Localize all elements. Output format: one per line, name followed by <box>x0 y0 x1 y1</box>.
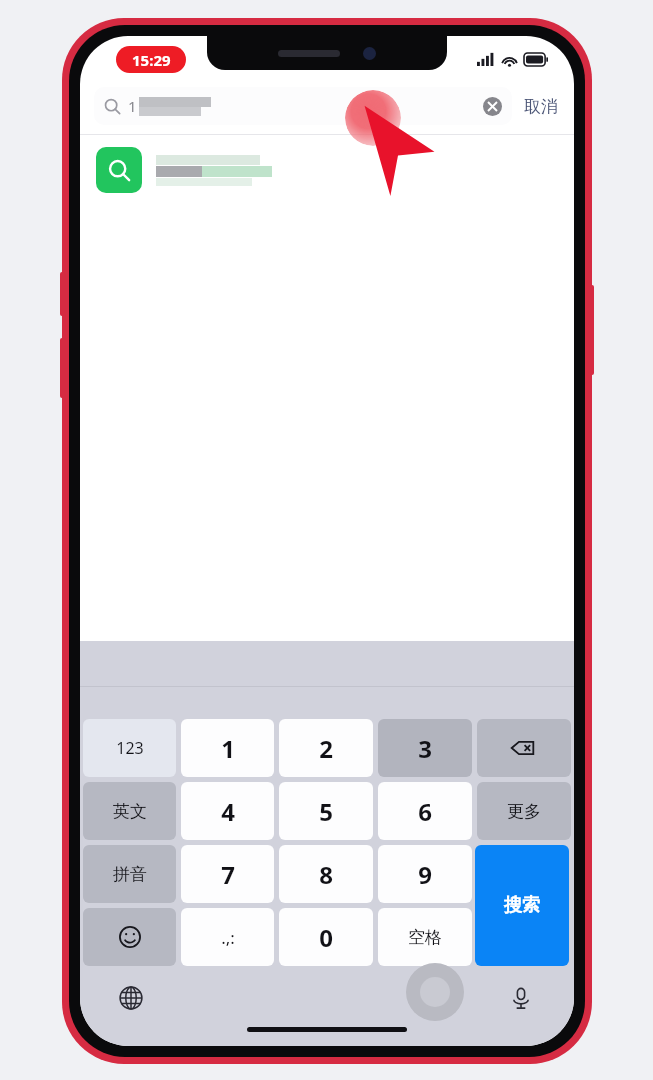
button[interactable]: 0 <box>279 908 373 966</box>
button[interactable]: 3 <box>378 719 472 777</box>
button[interactable]: Voice input <box>504 981 538 1015</box>
staticText: 取消 <box>524 96 558 117</box>
staticText: 更多 <box>507 801 541 822</box>
staticText: 123 <box>116 737 144 759</box>
staticText: .,: <box>221 926 235 949</box>
button[interactable]: 空格 <box>378 908 472 966</box>
button[interactable]: 2 <box>279 719 373 777</box>
staticText: 搜索 <box>504 894 540 917</box>
button[interactable]: 1 <box>94 87 512 125</box>
staticText: 7 <box>221 858 235 891</box>
button[interactable]: Emoji <box>83 908 176 966</box>
staticText: 8 <box>319 858 333 891</box>
staticText: 5 <box>319 795 333 828</box>
button[interactable]: 7 <box>181 845 274 903</box>
staticText: 6 <box>418 795 432 828</box>
staticText: 拼音 <box>113 864 147 885</box>
button[interactable]: 123 <box>83 719 176 777</box>
button[interactable]: 拼音 <box>83 845 176 903</box>
staticText: 9 <box>418 858 432 891</box>
staticText: 4 <box>221 795 235 828</box>
staticText: 2 <box>319 732 333 765</box>
button[interactable]: 英文 <box>83 782 176 840</box>
button[interactable]: Home <box>406 963 464 1021</box>
button[interactable]: 搜索 <box>475 845 569 966</box>
staticText: 0 <box>319 921 333 954</box>
button[interactable]: Clear text <box>483 97 502 116</box>
button[interactable]: 取消 <box>522 90 560 123</box>
button[interactable]: 4 <box>181 782 274 840</box>
button[interactable]: .,: <box>181 908 274 966</box>
staticText: 1 <box>128 96 137 116</box>
button[interactable]: 1 <box>181 719 274 777</box>
staticText: 15:29 <box>132 50 171 70</box>
button[interactable]: 6 <box>378 782 472 840</box>
button[interactable]: 更多 <box>477 782 571 840</box>
button[interactable]: 5 <box>279 782 373 840</box>
staticText: 1 <box>221 732 235 765</box>
button[interactable]: 8 <box>279 845 373 903</box>
button[interactable]: Change keyboard <box>114 981 148 1015</box>
staticText: 英文 <box>113 801 147 822</box>
staticText: 3 <box>418 732 432 765</box>
button[interactable]: 9 <box>378 845 472 903</box>
button[interactable] <box>80 134 574 206</box>
button[interactable]: Delete <box>477 719 571 777</box>
staticText: 空格 <box>408 927 442 948</box>
